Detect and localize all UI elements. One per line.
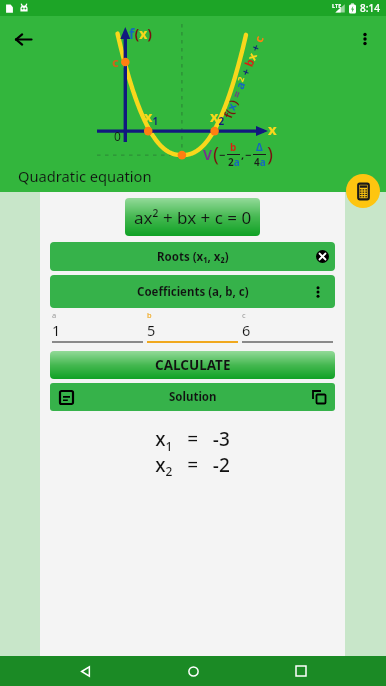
button[interactable]: Copy	[311, 389, 327, 405]
staticText: x1 = -3 x2 = -2	[155, 426, 230, 480]
staticText: −	[219, 147, 226, 162]
staticText: Δ	[256, 140, 263, 154]
staticText: c	[242, 310, 246, 320]
button[interactable]: Clear	[316, 250, 329, 263]
button[interactable]: Coefficients (a, b, c)	[50, 275, 335, 308]
button[interactable]: ax² + bx + c = 0	[125, 198, 260, 236]
staticText: 0	[114, 128, 121, 144]
staticText: (	[213, 140, 219, 167]
staticText: x2	[210, 106, 225, 128]
staticText: Roots (x₁, x₂)	[157, 249, 229, 265]
button[interactable]: CALCULATE	[50, 351, 335, 379]
button[interactable]: Recents	[286, 656, 316, 686]
button[interactable]: Details	[58, 389, 74, 405]
staticText: Coefficients (a, b, c)	[137, 284, 249, 300]
staticText: c	[112, 53, 119, 71]
staticText: b	[147, 310, 152, 320]
button[interactable]: Home	[178, 656, 208, 686]
button[interactable]: Back	[70, 656, 100, 686]
staticText: 6	[242, 320, 251, 340]
staticText: 2a	[228, 155, 240, 169]
staticText: f(x)	[129, 24, 153, 43]
staticText: x	[268, 119, 277, 139]
button[interactable]: More options	[348, 22, 382, 56]
staticText: b	[230, 140, 237, 154]
staticText: Solution	[169, 389, 217, 405]
staticText: 1	[52, 320, 61, 340]
staticText: )	[267, 140, 273, 167]
staticText: x1	[144, 106, 159, 128]
staticText: V	[203, 145, 213, 164]
staticText: 8:14	[360, 1, 380, 15]
staticText: ax² + bx + c = 0	[134, 206, 252, 229]
staticText: f(x) = a2 + bx + c	[220, 33, 268, 121]
staticText: Quadratic equation	[18, 166, 152, 186]
staticText: CALCULATE	[155, 356, 231, 374]
staticText: ,	[241, 147, 245, 162]
button[interactable]: Options	[307, 281, 329, 303]
staticText: LTE	[332, 2, 342, 9]
staticText: a	[52, 310, 57, 320]
button[interactable]: Calculator	[346, 174, 380, 208]
staticText: −	[245, 147, 252, 162]
staticText: 5	[147, 320, 156, 340]
staticText: 4a	[254, 155, 266, 169]
button[interactable]: Solution	[50, 383, 335, 411]
button[interactable]: Roots (x₁, x₂)	[50, 242, 335, 271]
button[interactable]: Back	[6, 22, 40, 56]
